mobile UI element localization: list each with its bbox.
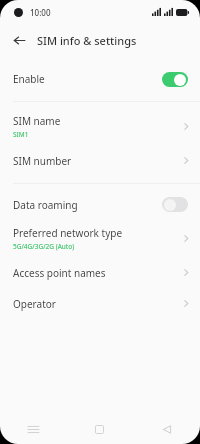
button[interactable]: Off: [162, 197, 188, 212]
staticText: SIM number: [13, 154, 72, 168]
button[interactable]: Enable: [0, 64, 200, 94]
button[interactable]: SIM number: [0, 145, 200, 176]
staticText: Preferred network type: [13, 226, 123, 240]
staticText: Operator: [13, 297, 56, 311]
button[interactable]: Operator: [0, 288, 200, 319]
button[interactable]: Back: [6, 27, 32, 53]
staticText: Enable: [13, 72, 162, 86]
staticText: SIM info & settings: [37, 33, 137, 48]
button[interactable]: Recent apps: [0, 414, 66, 444]
button[interactable]: Data roaming: [0, 189, 200, 220]
button[interactable]: Preferred network type: [0, 220, 200, 257]
staticText: SIM1: [13, 130, 29, 139]
staticText: SIM name: [13, 114, 61, 128]
button[interactable]: SIM name: [0, 108, 200, 145]
staticText: Data roaming: [13, 198, 162, 212]
staticText: Access point names: [13, 266, 106, 280]
staticText: 10:00: [30, 7, 51, 18]
button[interactable]: Access point names: [0, 257, 200, 288]
button[interactable]: On: [162, 72, 188, 87]
button[interactable]: Home: [66, 414, 133, 444]
button[interactable]: Back: [133, 414, 200, 444]
staticText: 5G/4G/3G/2G (Auto): [13, 242, 75, 251]
